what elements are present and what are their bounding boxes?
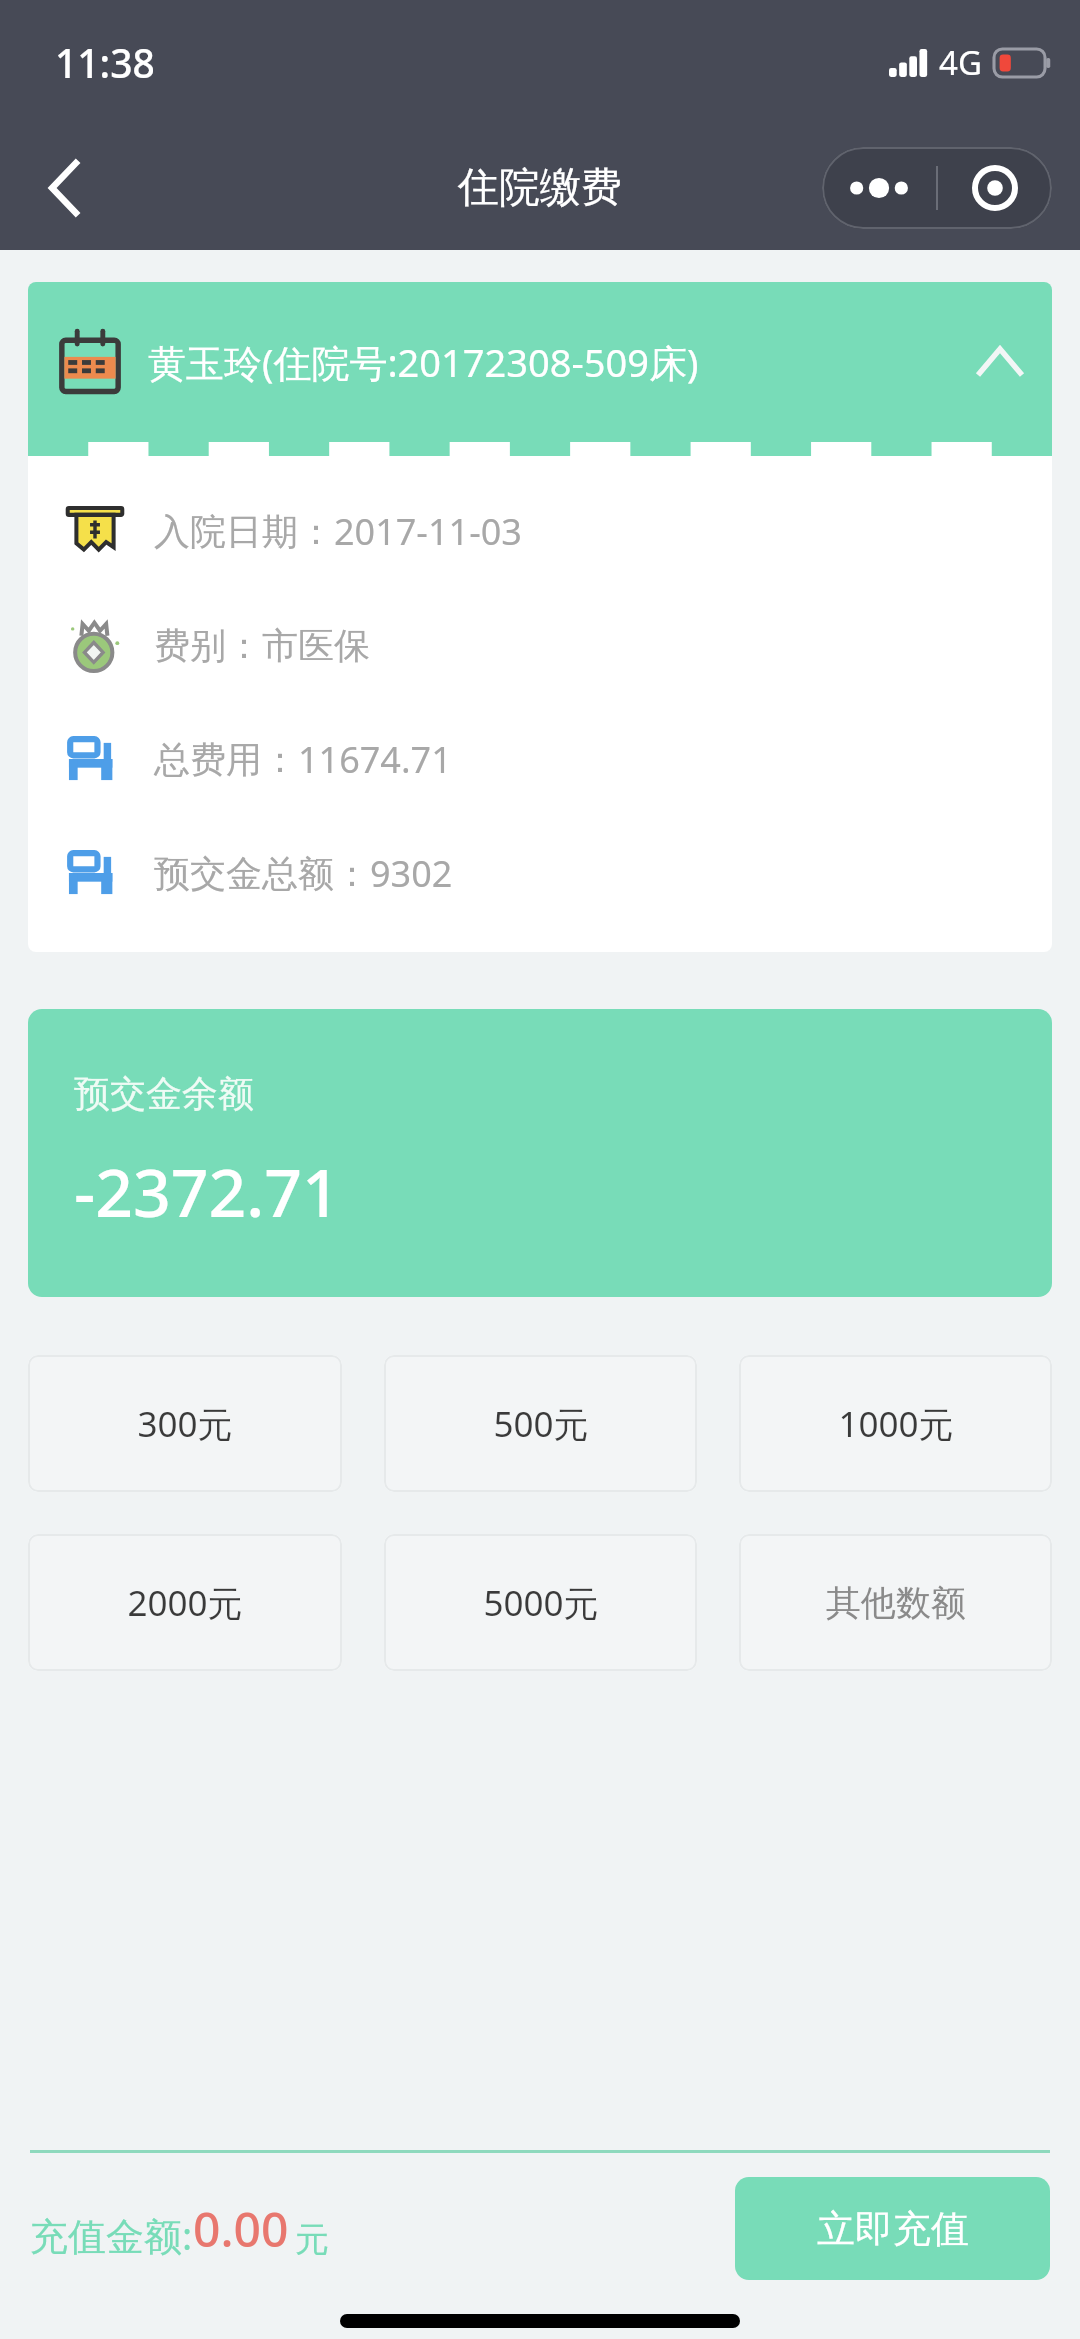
staticText: 充值金额: [30, 2209, 193, 2261]
staticText: 4G [939, 40, 982, 85]
button[interactable]: 500元 [384, 1355, 697, 1492]
staticText: 市医保 [262, 623, 370, 668]
button[interactable]: 黄玉玲(住院号:20172308-509床) [28, 282, 1052, 442]
staticText: 1000元 [838, 1400, 954, 1448]
staticText: 元 [295, 2218, 329, 2261]
staticText: 11:38 [55, 36, 155, 89]
button[interactable]: 2000元 [28, 1534, 342, 1671]
staticText: 500元 [493, 1400, 589, 1448]
staticText: 黄玉玲(住院号:20172308-509床) [148, 336, 699, 388]
button[interactable]: Close [938, 147, 1052, 229]
button[interactable]: 300元 [28, 1355, 342, 1492]
button[interactable]: 其他数额 [739, 1534, 1052, 1671]
button[interactable]: 预交金余额 [28, 1009, 1052, 1297]
staticText: 2000元 [127, 1579, 243, 1627]
staticText: 0.00 [193, 2196, 289, 2261]
staticText: 预交金总额： [154, 851, 370, 896]
button[interactable]: Back [20, 143, 110, 233]
staticText: 住院缴费 [458, 162, 622, 214]
staticText: 入院日期： [154, 509, 334, 554]
staticText: 300元 [137, 1400, 233, 1448]
staticText: 5000元 [483, 1579, 599, 1627]
staticText: 2017-11-03 [334, 507, 522, 556]
staticText: 费别： [154, 623, 262, 668]
staticText: 9302 [370, 849, 453, 898]
staticText: -2372.71 [74, 1146, 340, 1236]
staticText: 其他数额 [826, 1581, 966, 1625]
staticText: 预交金余额 [74, 1071, 254, 1116]
button[interactable]: 立即充值 [735, 2177, 1050, 2280]
button[interactable]: 1000元 [739, 1355, 1052, 1492]
staticText: 总费用： [154, 737, 298, 782]
staticText: 11674.71 [298, 735, 452, 784]
staticText: 立即充值 [817, 2205, 969, 2253]
button[interactable]: 5000元 [384, 1534, 697, 1671]
button[interactable]: More [822, 147, 936, 229]
